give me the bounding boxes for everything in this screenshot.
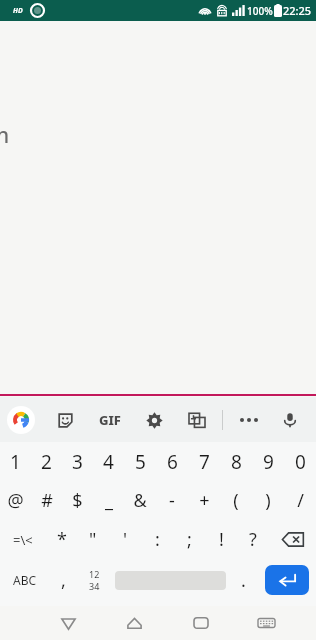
button[interactable]: Backspace (269, 520, 316, 559)
staticText: 7 (199, 449, 210, 475)
button[interactable]: =\< (0, 520, 46, 559)
button[interactable]: GIF (95, 405, 125, 435)
button[interactable]: Stickers (52, 407, 78, 433)
staticText: =\< (13, 531, 33, 549)
button[interactable]: . (229, 559, 257, 601)
staticText: 8 (231, 449, 242, 475)
staticText: - (169, 488, 175, 513)
staticText: ? (249, 527, 257, 552)
button[interactable]: @ (0, 481, 31, 520)
staticText: ; (187, 527, 192, 552)
staticText: ABC (13, 572, 37, 588)
button[interactable]: ' (109, 520, 141, 559)
staticText: @ (7, 488, 24, 513)
staticText: 9 (263, 449, 274, 475)
button[interactable]: 2 (31, 442, 62, 481)
staticText: HD (13, 6, 23, 16)
button[interactable]: 7 (188, 442, 220, 481)
button[interactable]: ! (205, 520, 237, 559)
button[interactable]: Recent apps (180, 606, 221, 640)
staticText: . (241, 568, 246, 593)
button[interactable]: : (141, 520, 173, 559)
button[interactable]: # (31, 481, 62, 520)
button[interactable]: , (49, 559, 77, 601)
button[interactable]: Settings (141, 407, 167, 433)
staticText: 6 (167, 449, 178, 475)
button[interactable]: * (46, 520, 77, 559)
button[interactable]: 8 (220, 442, 252, 481)
staticText: & (133, 488, 147, 513)
staticText: $ (72, 488, 83, 513)
staticText: * (57, 527, 67, 552)
staticText: " (89, 527, 97, 552)
staticText: / (297, 488, 304, 513)
staticText: + (199, 488, 210, 513)
staticText: 22:25 (283, 3, 312, 18)
staticText: 1 (10, 449, 21, 475)
button[interactable]: ? (237, 520, 269, 559)
staticText: h (0, 121, 10, 150)
button[interactable]: 0 (284, 442, 316, 481)
staticText: 34 (89, 580, 100, 592)
button[interactable]: Numeric keypad (77, 559, 111, 601)
button[interactable]: & (124, 481, 156, 520)
button[interactable]: Back (48, 606, 89, 640)
staticText: ! (219, 527, 224, 552)
button[interactable]: Google search (7, 406, 35, 434)
staticText: _ (105, 488, 113, 513)
staticText: 0 (295, 449, 306, 475)
staticText: : (155, 527, 160, 552)
button[interactable]: Translate (184, 407, 210, 433)
button[interactable]: 6 (156, 442, 188, 481)
staticText: ) (265, 488, 271, 513)
button[interactable]: More options (236, 407, 262, 433)
button[interactable]: " (77, 520, 109, 559)
button[interactable]: Space (111, 559, 229, 601)
button[interactable]: _ (93, 481, 124, 520)
button[interactable]: 4 (93, 442, 124, 481)
button[interactable]: + (188, 481, 220, 520)
staticText: GIF (99, 411, 121, 429)
button[interactable]: ; (173, 520, 205, 559)
staticText: , (61, 568, 66, 593)
button[interactable]: Switch keyboard (246, 606, 287, 640)
button[interactable]: - (156, 481, 188, 520)
button[interactable]: 5 (124, 442, 156, 481)
button[interactable]: 1 (0, 442, 31, 481)
button[interactable]: ) (252, 481, 284, 520)
staticText: 4 (103, 449, 114, 475)
button[interactable]: $ (62, 481, 93, 520)
button[interactable]: 9 (252, 442, 284, 481)
staticText: 12 (89, 568, 100, 580)
staticText: # (41, 488, 53, 513)
button[interactable]: ABC (0, 559, 49, 601)
button[interactable]: Voice input (277, 407, 303, 433)
button[interactable]: Enter (265, 565, 309, 595)
staticText: 100% (247, 4, 273, 18)
button[interactable]: / (284, 481, 316, 520)
staticText: 5 (135, 449, 146, 475)
staticText: ( (233, 488, 239, 513)
button[interactable]: Home (114, 606, 155, 640)
staticText: ' (123, 527, 128, 552)
staticText: 2 (41, 449, 52, 475)
button[interactable]: 3 (62, 442, 93, 481)
staticText: 3 (72, 449, 83, 475)
button[interactable]: ( (220, 481, 252, 520)
